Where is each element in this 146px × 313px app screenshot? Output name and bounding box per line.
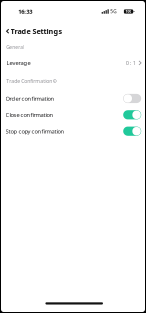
button[interactable]: Stop copy confirmation	[1, 123, 145, 139]
staticText: Trade Settings	[10, 26, 62, 36]
staticText: Order confirmation	[6, 95, 55, 102]
staticText: 5G	[110, 8, 116, 15]
button[interactable]: Close confirmation	[1, 107, 145, 123]
staticText: 100	[125, 9, 131, 14]
button[interactable]: Leverage	[1, 54, 145, 72]
staticText: 0 : 1	[126, 59, 136, 67]
staticText: Trade Confirmation	[6, 77, 52, 84]
staticText: General	[6, 44, 24, 50]
staticText: Leverage	[7, 59, 31, 67]
staticText: Close confirmation	[6, 111, 54, 119]
staticText: Stop copy confirmation	[6, 127, 65, 135]
staticText: 16:33	[18, 8, 32, 15]
button[interactable]: Trade Settings	[1, 22, 145, 40]
button[interactable]: Order confirmation	[1, 90, 145, 107]
